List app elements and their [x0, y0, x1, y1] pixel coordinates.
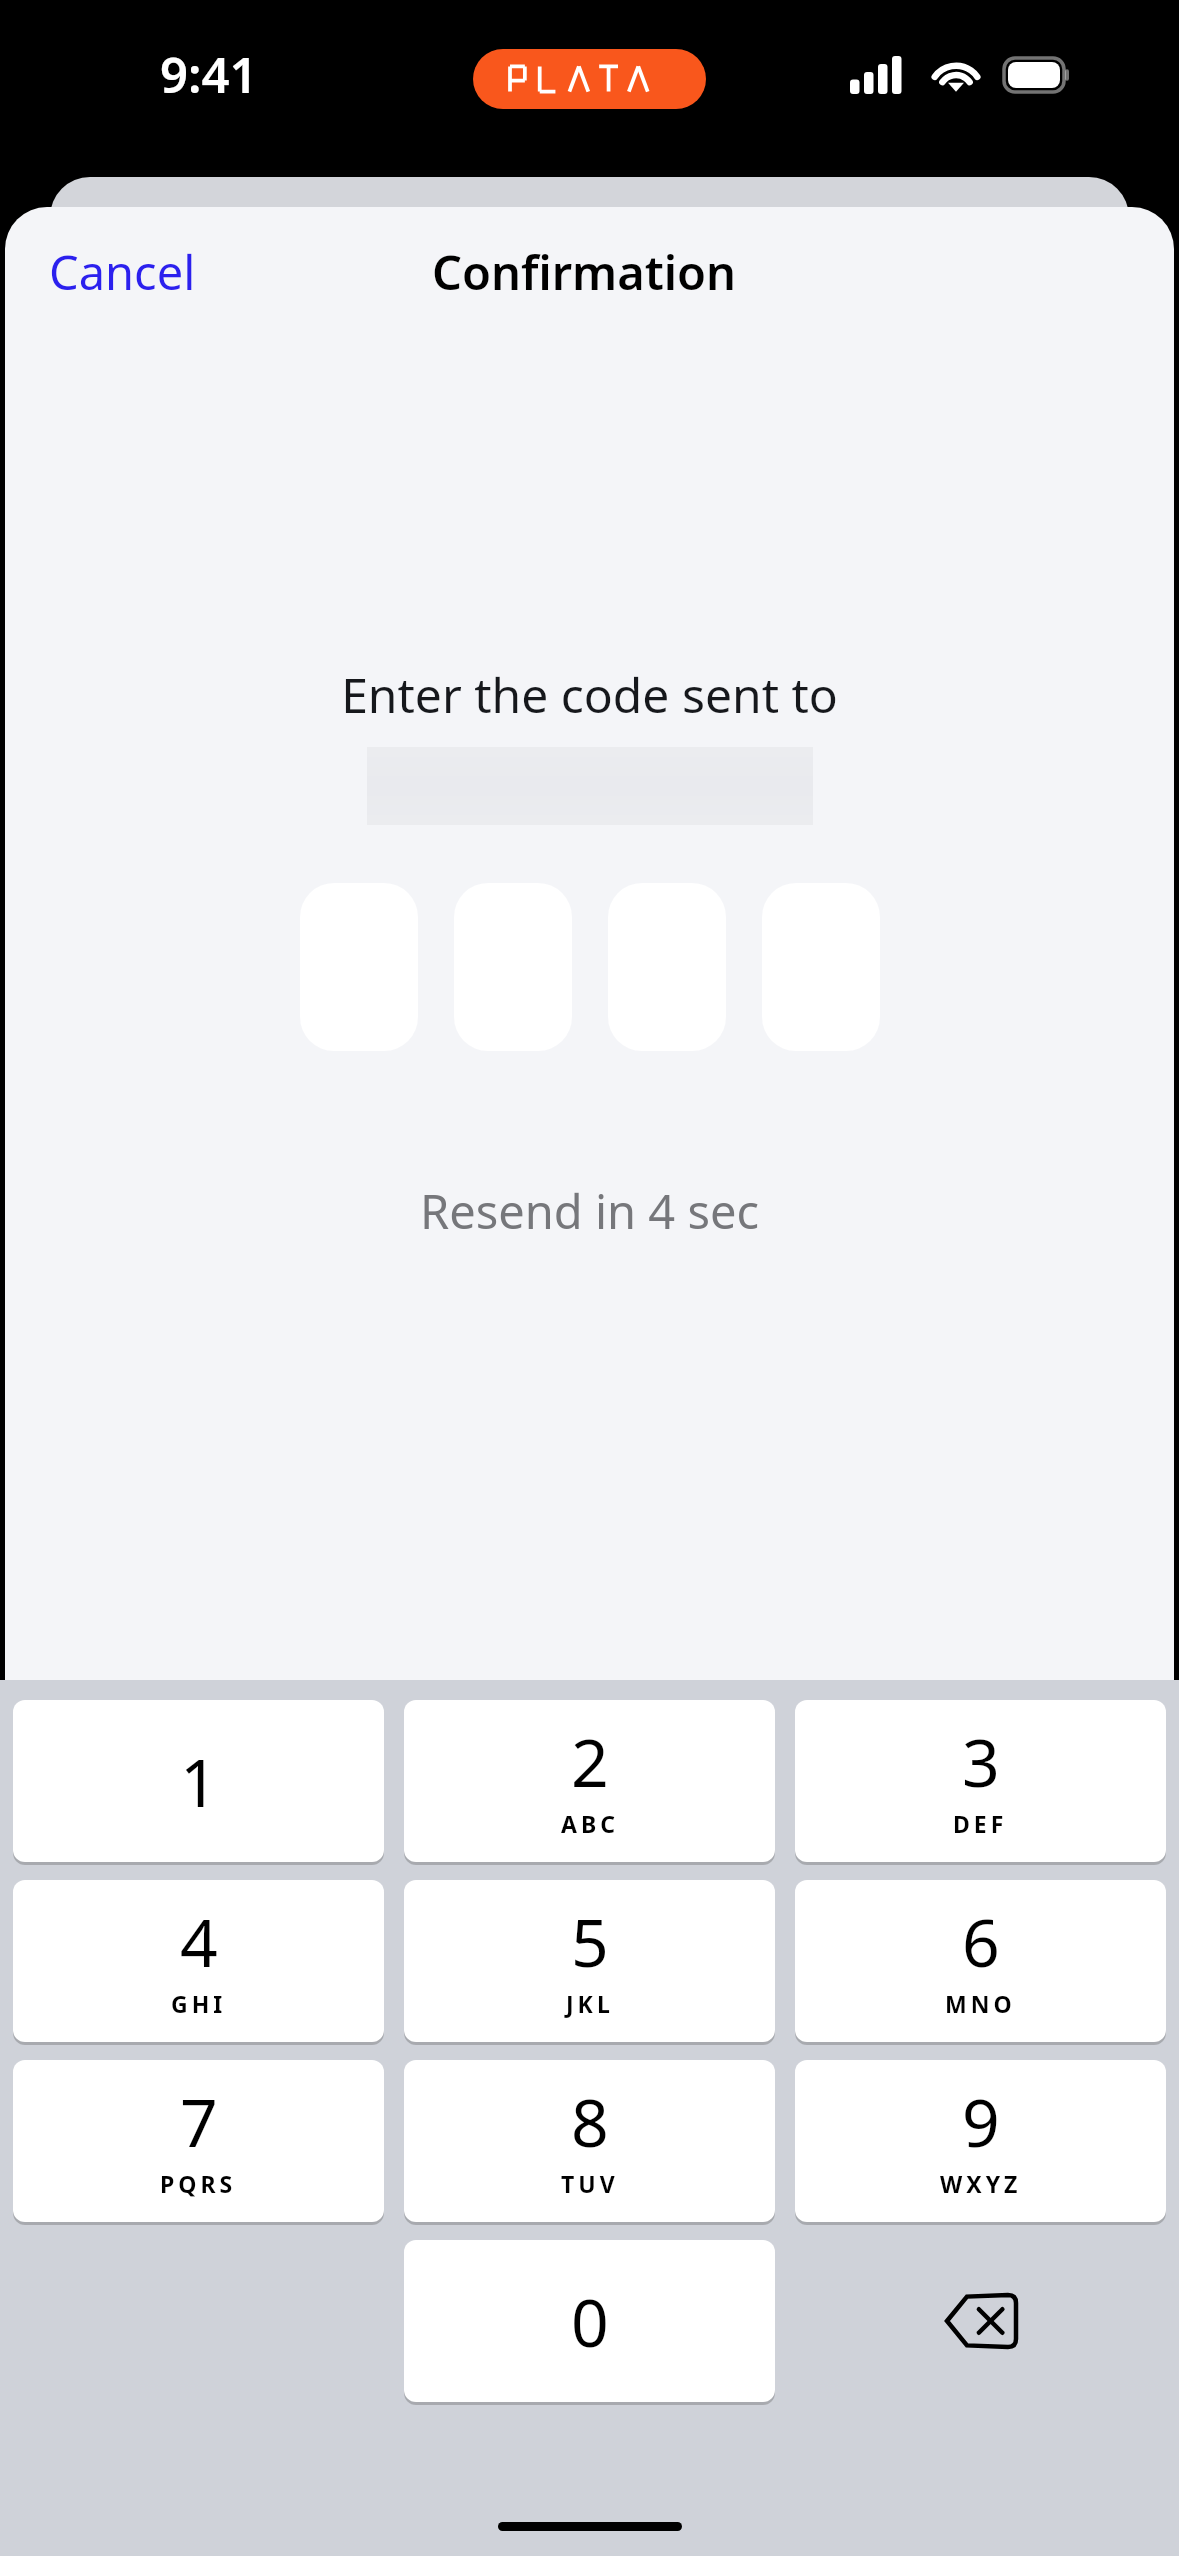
staticText: Resend in 4 sec [420, 1179, 760, 1243]
button[interactable]: 2 [404, 1700, 775, 1862]
staticText: Enter the code sent to [341, 662, 838, 727]
staticText: 8 [571, 2076, 609, 2166]
button[interactable]: 0 [404, 2240, 775, 2402]
button[interactable]: 9 [795, 2060, 1166, 2222]
staticText: 0 [571, 2276, 609, 2366]
staticText: Cancel [49, 240, 196, 304]
staticText: 5 [571, 1896, 609, 1986]
button[interactable]: 1 [13, 1700, 384, 1862]
staticText: 2 [571, 1716, 609, 1806]
staticText: ABC [561, 1808, 619, 1839]
button[interactable]: 6 [795, 1880, 1166, 2042]
button[interactable]: 4 [13, 1880, 384, 2042]
button[interactable]: Cancel [29, 228, 216, 316]
staticText: 3 [962, 1716, 1000, 1806]
staticText: 9 [962, 2076, 1000, 2166]
staticText: DEF [953, 1808, 1008, 1839]
button[interactable]: 8 [404, 2060, 775, 2222]
staticText: 7 [180, 2076, 218, 2166]
staticText: 9:41 [160, 41, 258, 108]
button[interactable]: 3 [795, 1700, 1166, 1862]
button[interactable]: 7 [13, 2060, 384, 2222]
button[interactable]: 5 [404, 1880, 775, 2042]
staticText: MNO [945, 1988, 1016, 2019]
staticText: PQRS [160, 2168, 237, 2199]
staticText: JKL [566, 1988, 614, 2019]
staticText: 4 [180, 1896, 218, 1986]
button[interactable]: Backspace [795, 2240, 1166, 2402]
staticText: 1 [180, 1736, 218, 1826]
staticText: Confirmation [432, 240, 737, 304]
staticText: GHI [171, 1988, 227, 2019]
staticText: WXYZ [940, 2168, 1022, 2199]
button[interactable]: Resend in 4 sec [402, 1171, 778, 1251]
staticText: 6 [962, 1896, 1000, 1986]
staticText: TUV [561, 2168, 619, 2199]
